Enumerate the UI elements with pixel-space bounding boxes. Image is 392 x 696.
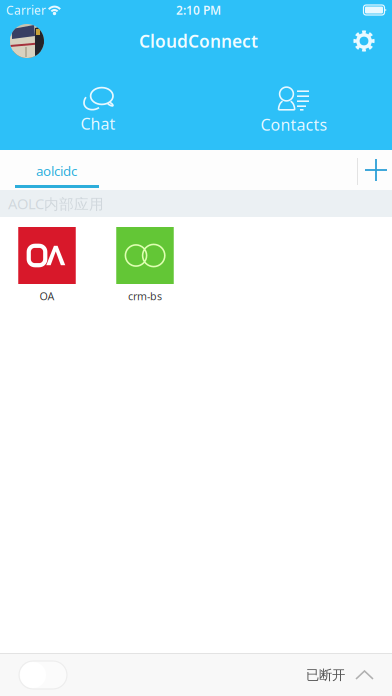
staticText: 已断开 (306, 667, 345, 683)
staticText: 2:10 PM (176, 2, 221, 18)
button[interactable]: OA (0, 227, 96, 303)
button[interactable]: crm-bs (96, 227, 194, 303)
staticText: OA (39, 289, 54, 303)
staticText: crm-bs (128, 289, 162, 303)
staticText: CloudConnect (139, 29, 258, 52)
staticText: AOLC内部应用 (8, 194, 104, 213)
button[interactable]: Profile (10, 24, 44, 58)
button[interactable]: 已断开 (306, 667, 373, 683)
staticText: Carrier (6, 2, 46, 18)
button[interactable]: aolcidc (0, 150, 114, 190)
button[interactable]: Settings (353, 30, 375, 52)
button[interactable]: Toggle (19, 661, 67, 689)
button[interactable]: Add (359, 150, 392, 190)
staticText: Chat (80, 113, 115, 134)
staticText: Contacts (260, 114, 327, 135)
staticText: aolcidc (36, 162, 77, 180)
button[interactable]: Contacts (196, 62, 392, 150)
button[interactable]: Chat (0, 62, 196, 150)
